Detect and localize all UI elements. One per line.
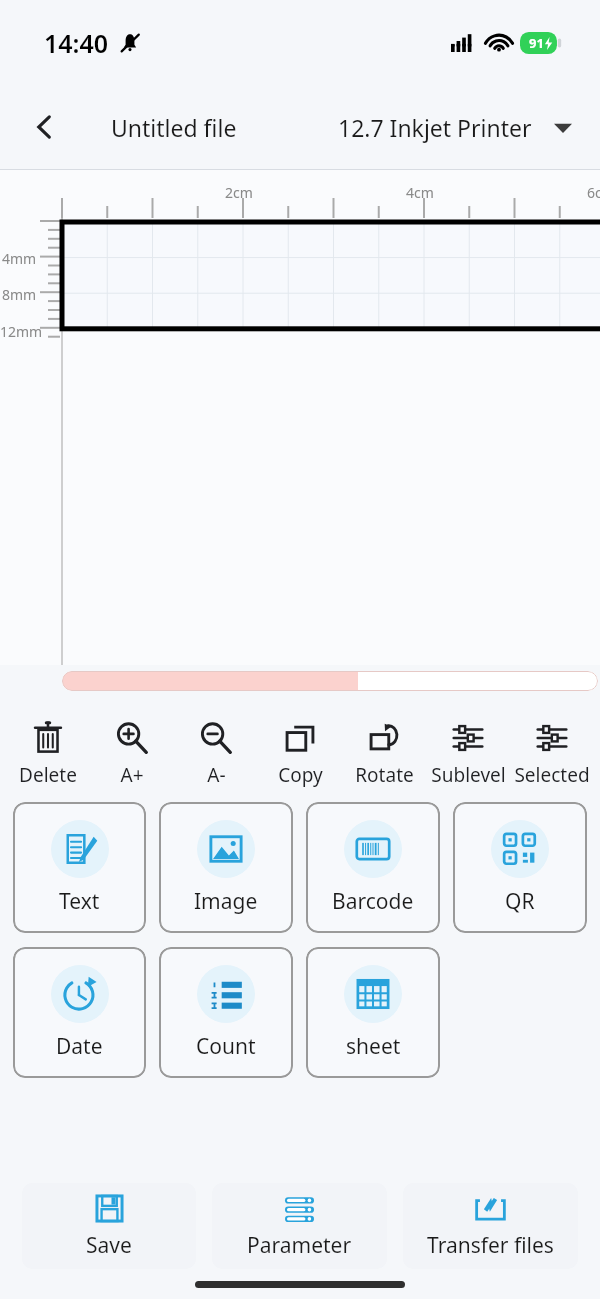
staticText: Rotate	[355, 762, 414, 788]
staticText: Copy	[278, 762, 323, 788]
staticText: 12mm	[0, 322, 43, 341]
staticText: Image	[194, 887, 258, 916]
button[interactable]: Count	[159, 947, 293, 1078]
button[interactable]	[62, 671, 598, 691]
staticText: Date	[56, 1032, 103, 1061]
button[interactable]: Rotate	[342, 721, 426, 788]
button[interactable]: Text	[13, 802, 146, 933]
button[interactable]: Image	[159, 802, 293, 933]
staticText: sheet	[346, 1032, 401, 1061]
button[interactable]: Barcode	[306, 802, 440, 933]
staticText: Transfer files	[427, 1231, 554, 1260]
staticText: Text	[59, 887, 100, 916]
button[interactable]: Untitled file	[111, 112, 237, 143]
staticText: QR	[505, 887, 535, 916]
staticText: Selected	[514, 762, 590, 788]
staticText: 14:40	[44, 26, 109, 60]
staticText: 4mm	[2, 249, 37, 268]
staticText: A-	[207, 762, 226, 788]
button[interactable]: Back	[22, 104, 68, 150]
staticText: 2cm	[225, 183, 253, 202]
button[interactable]: A+	[90, 721, 174, 788]
staticText: Delete	[19, 762, 77, 788]
button[interactable]: 12.7 Inkjet Printer	[338, 112, 572, 143]
staticText: 8mm	[2, 285, 37, 304]
staticText: 4cm	[406, 183, 434, 202]
button[interactable]: Save	[22, 1183, 196, 1269]
staticText: A+	[120, 762, 144, 788]
button[interactable]: A-	[174, 721, 258, 788]
staticText: Parameter	[247, 1231, 352, 1260]
staticText: 91	[529, 34, 544, 52]
button[interactable]: Date	[13, 947, 146, 1078]
staticText: Save	[86, 1231, 132, 1260]
staticText: 6c	[587, 183, 600, 202]
staticText: Count	[196, 1032, 256, 1061]
button[interactable]: Selected	[510, 721, 594, 788]
button[interactable]: QR	[453, 802, 587, 933]
button[interactable]: Transfer files	[403, 1183, 578, 1269]
staticText: Sublevel	[431, 762, 506, 788]
staticText: Barcode	[332, 887, 414, 916]
staticText: 12.7 Inkjet Printer	[338, 112, 532, 143]
button[interactable]: Delete	[6, 721, 90, 788]
button[interactable]: Parameter	[212, 1183, 387, 1269]
button[interactable]: sheet	[306, 947, 440, 1078]
button[interactable]: Copy	[258, 721, 342, 788]
button[interactable]: Sublevel	[426, 721, 510, 788]
